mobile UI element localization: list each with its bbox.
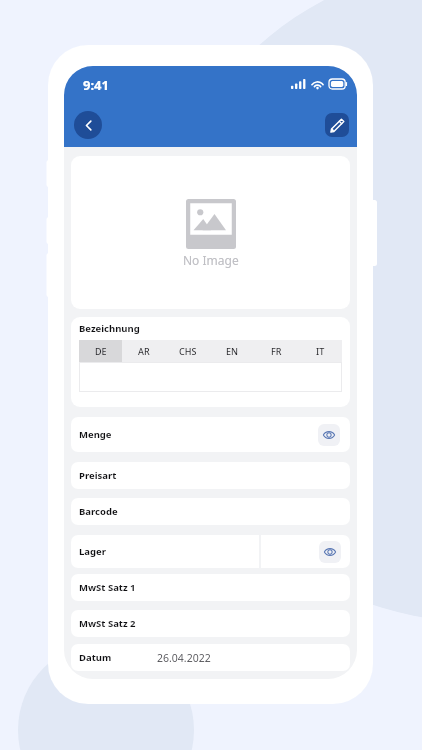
staticText: EN — [226, 345, 238, 357]
staticText: Preisart — [79, 469, 117, 482]
staticText: Lager — [79, 545, 106, 558]
button[interactable]: Edit — [325, 113, 349, 137]
button[interactable]: Show stock — [319, 541, 341, 563]
staticText: 26.04.2022 — [157, 651, 211, 665]
button[interactable]: AR — [122, 340, 166, 362]
button[interactable]: Preisart — [71, 462, 350, 489]
staticText: DE — [95, 345, 107, 357]
staticText: FR — [271, 345, 282, 357]
staticText: AR — [138, 345, 150, 357]
button[interactable]: DE — [79, 340, 122, 362]
staticText: Bezeichnung — [79, 322, 140, 335]
button[interactable]: MwSt Satz 2 — [71, 610, 350, 637]
staticText: No Image — [183, 252, 239, 268]
button[interactable]: EN — [210, 340, 254, 362]
button[interactable]: MwSt Satz 1 — [71, 574, 350, 601]
staticText: 9:41 — [83, 76, 109, 94]
staticText: Datum — [79, 651, 112, 664]
button[interactable]: Lager — [71, 535, 350, 568]
button[interactable]: CHS — [166, 340, 210, 362]
button[interactable]: Menge — [71, 417, 350, 452]
staticText: MwSt Satz 2 — [79, 617, 136, 630]
staticText: Menge — [79, 428, 112, 441]
staticText: IT — [316, 345, 325, 357]
staticText: Barcode — [79, 505, 118, 518]
button[interactable]: Barcode — [71, 498, 350, 525]
button[interactable]: No Image — [71, 156, 350, 309]
button[interactable]: Datum — [71, 644, 350, 671]
staticText: CHS — [179, 345, 197, 357]
button[interactable]: IT — [298, 340, 342, 362]
button[interactable]: Bezeichnung — [71, 317, 350, 407]
button[interactable]: Back — [74, 111, 102, 139]
staticText: MwSt Satz 1 — [79, 581, 136, 594]
button[interactable]: Show — [318, 424, 340, 446]
button[interactable]: FR — [254, 340, 298, 362]
